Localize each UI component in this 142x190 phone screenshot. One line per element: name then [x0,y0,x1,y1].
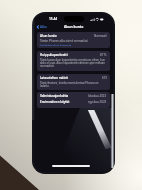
staticText: Huippukapasiteetti [40,53,68,57]
staticText: Valmistusajankohta [40,94,69,98]
button[interactable]: Lataustehon määrä [37,74,110,90]
staticText: Akku [40,25,47,29]
staticText: Akun kunto [64,24,84,29]
staticText: Tämä ilmaisee, kuinka monta kertaa iPhon… [40,81,107,87]
staticText: Tämän iPhonen akku toimii normaalisti. [40,39,89,43]
staticText: 15.44 [49,17,58,21]
button[interactable]: Huippukapasiteetti [37,51,110,71]
staticText: 87 % [100,53,107,57]
staticText: 673 [102,76,107,80]
button[interactable]: Akun kunto [37,32,110,48]
staticText: Normaali [94,34,107,38]
staticText: lokakuu 2023 [88,94,107,98]
button[interactable]: Valmistusajankohta [37,92,110,108]
staticText: Tämä kuvaa akun kapasiteettia verrattuna… [40,58,107,67]
staticText: Ensimmäinen käyttö [40,100,70,104]
staticText: Akun kunto [40,34,57,38]
staticText: Lataustehon määrä [40,76,68,80]
staticText: syyskuu 2023 [88,100,107,104]
button[interactable]: Takaisin Akku [34,24,49,30]
staticText: Lisätietoja akun kunnosta [40,44,72,46]
